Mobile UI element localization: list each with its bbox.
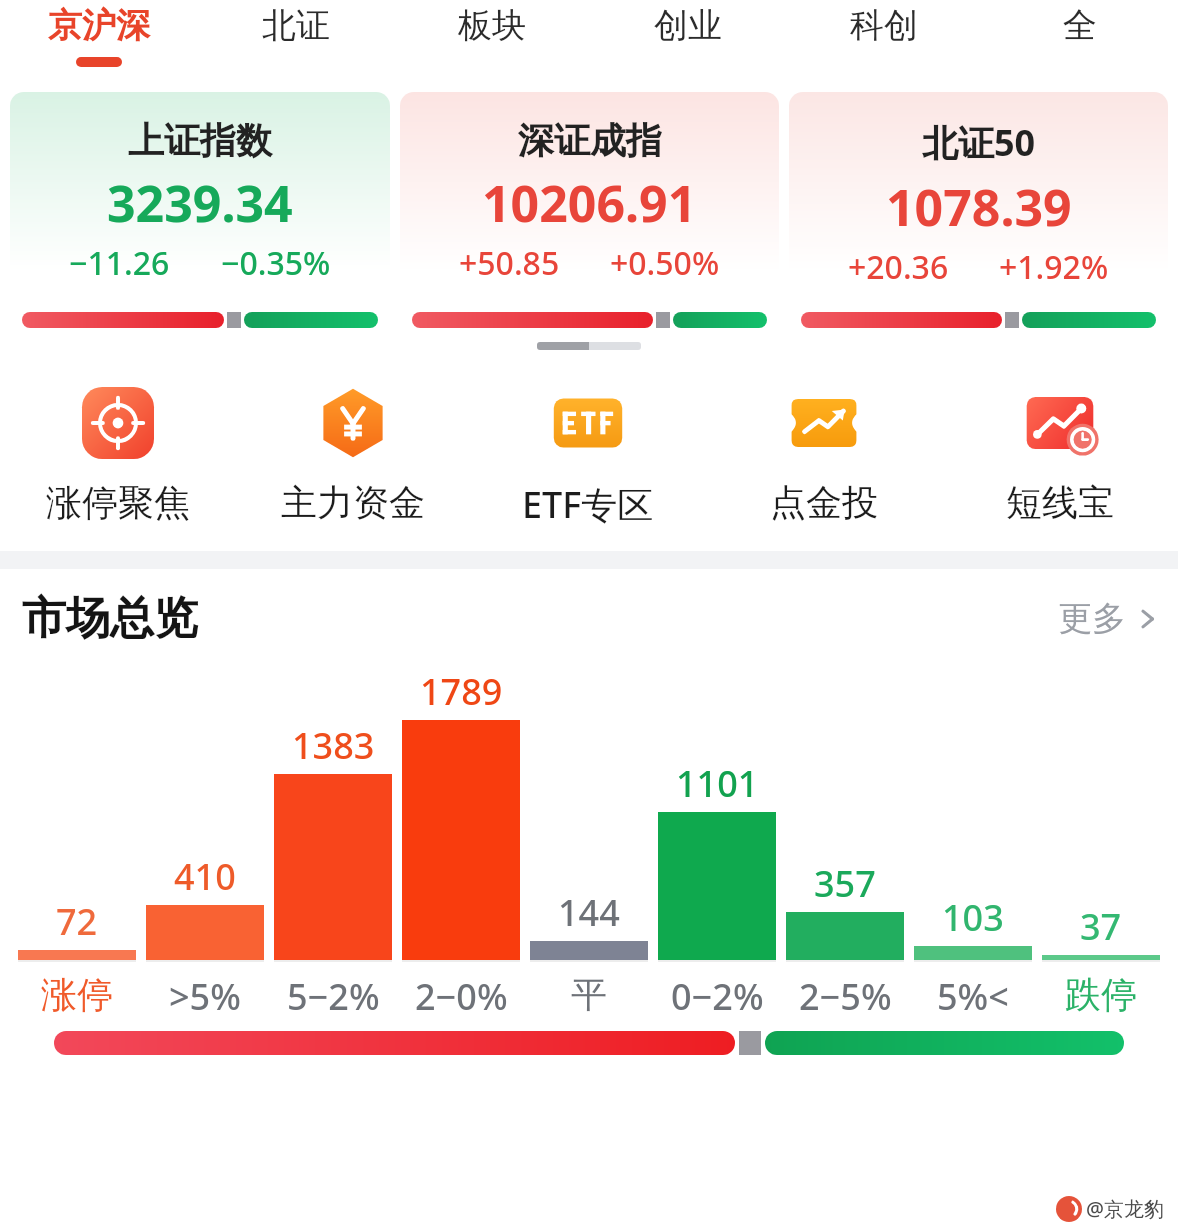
- staticText: 72: [56, 897, 98, 946]
- button[interactable]: 京沪深: [0, 0, 197, 67]
- staticText: 短线宝: [1006, 480, 1114, 525]
- staticText: 主力资金: [281, 480, 425, 525]
- staticText: 2−0%: [415, 972, 508, 1021]
- staticText: @京龙豹: [1086, 1195, 1164, 1222]
- button[interactable]: 短线宝: [942, 378, 1178, 525]
- staticText: 144: [558, 888, 620, 937]
- staticText: 涨停聚焦: [46, 480, 190, 525]
- staticText: +1.92%: [999, 245, 1109, 289]
- button[interactable]: 357: [786, 660, 904, 1021]
- staticText: 1383: [292, 721, 375, 770]
- staticText: 点金投: [770, 480, 878, 525]
- staticText: 10206.91: [482, 169, 697, 237]
- staticText: +0.50%: [610, 241, 720, 285]
- button[interactable]: 深证成指: [400, 92, 779, 332]
- staticText: 3239.34: [107, 169, 293, 237]
- staticText: 0−2%: [671, 972, 764, 1021]
- button[interactable]: 科创: [786, 0, 982, 57]
- staticText: 板块: [458, 4, 526, 47]
- button[interactable]: 72: [18, 660, 136, 1017]
- staticText: 科创: [850, 4, 918, 47]
- button[interactable]: 北证: [197, 0, 394, 57]
- button[interactable]: 1101: [658, 660, 776, 1021]
- staticText: 5%<: [937, 972, 1009, 1021]
- staticText: ETF专区: [522, 480, 654, 529]
- button[interactable]: 103: [914, 660, 1032, 1021]
- staticText: +20.36: [848, 245, 949, 289]
- staticText: 5−2%: [287, 972, 380, 1021]
- button[interactable]: ETF专区: [470, 378, 706, 529]
- staticText: 37: [1080, 902, 1122, 951]
- button[interactable]: 点金投: [706, 378, 942, 525]
- staticText: 涨停: [41, 972, 113, 1017]
- staticText: 上证指数: [128, 118, 272, 163]
- staticText: 2−5%: [799, 972, 892, 1021]
- staticText: 357: [814, 859, 876, 908]
- button[interactable]: 创业: [590, 0, 786, 57]
- staticText: 创业: [654, 4, 722, 47]
- button[interactable]: 1383: [274, 660, 392, 1021]
- staticText: 深证成指: [518, 118, 662, 163]
- staticText: 北证50: [922, 118, 1036, 167]
- button[interactable]: 37: [1042, 660, 1160, 1017]
- staticText: >5%: [169, 972, 241, 1021]
- button[interactable]: 更多: [1058, 597, 1162, 640]
- button[interactable]: 北证50: [789, 92, 1168, 332]
- staticText: 更多: [1058, 597, 1126, 640]
- staticText: 北证: [262, 4, 330, 47]
- staticText: +50.85: [459, 241, 560, 285]
- staticText: 410: [174, 852, 236, 901]
- staticText: 市场总览: [22, 591, 198, 646]
- button[interactable]: 上证指数: [10, 92, 390, 332]
- staticText: 全: [1063, 4, 1097, 47]
- staticText: 1789: [420, 667, 503, 716]
- staticText: 跌停: [1065, 972, 1137, 1017]
- button[interactable]: 主力资金: [235, 378, 470, 525]
- staticText: −11.26: [69, 241, 170, 285]
- staticText: 1101: [676, 759, 759, 808]
- staticText: 103: [942, 893, 1004, 942]
- button[interactable]: 1789: [402, 660, 520, 1021]
- staticText: 京沪深: [48, 4, 150, 47]
- button[interactable]: 144: [530, 660, 648, 1017]
- button[interactable]: 410: [146, 660, 264, 1021]
- button[interactable]: 板块: [394, 0, 590, 57]
- button[interactable]: 全: [982, 0, 1178, 57]
- staticText: 平: [571, 972, 607, 1017]
- staticText: 1078.39: [886, 173, 1072, 241]
- staticText: −0.35%: [221, 241, 331, 285]
- button[interactable]: 涨停聚焦: [0, 378, 235, 525]
